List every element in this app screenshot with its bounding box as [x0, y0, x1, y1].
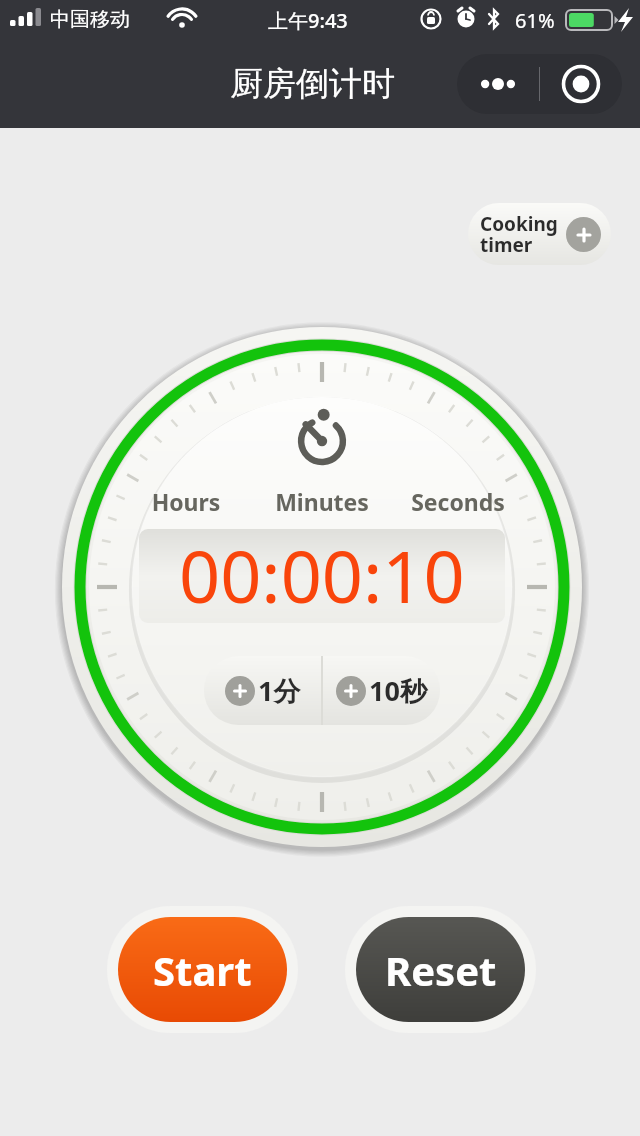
button[interactable]: 1分	[204, 656, 321, 725]
staticText: 10秒	[369, 672, 427, 709]
button[interactable]: Reset	[345, 906, 536, 1033]
staticText: 61%	[515, 7, 555, 34]
staticText: Cooking timer	[480, 211, 566, 258]
staticText: 上午9:43	[268, 7, 348, 34]
button[interactable]: More and close	[457, 54, 622, 114]
staticText: Hours	[118, 486, 254, 517]
staticText: Start	[153, 943, 252, 997]
staticText: Seconds	[390, 486, 526, 517]
staticText: 1分	[258, 672, 301, 709]
staticText: 中国移动	[50, 7, 130, 32]
button[interactable]: 10秒	[323, 656, 440, 725]
staticText: Reset	[385, 943, 497, 997]
staticText: Minutes	[254, 486, 390, 517]
staticText: 00:00:10	[179, 529, 465, 620]
button[interactable]: Cooking timer	[468, 203, 611, 265]
staticText: 厨房倒计时	[230, 63, 395, 105]
button[interactable]: Start	[107, 906, 298, 1033]
